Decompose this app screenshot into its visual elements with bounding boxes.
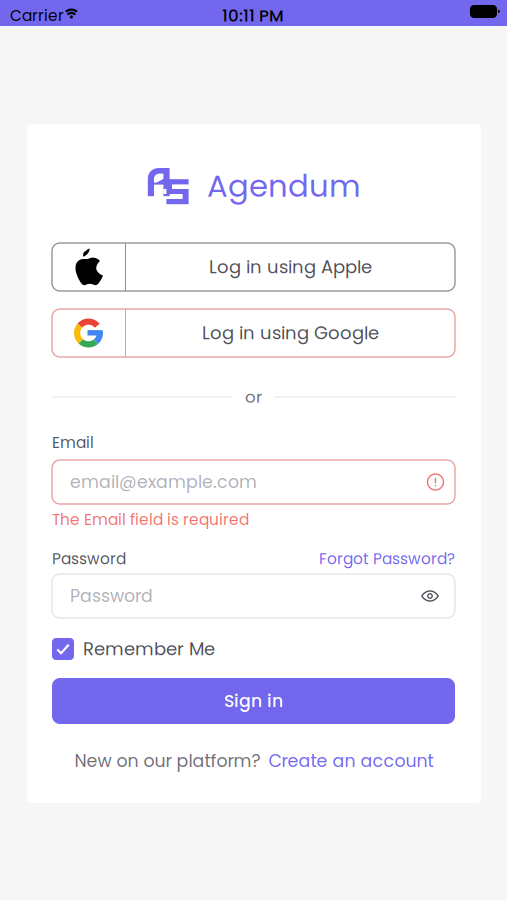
button[interactable]: Log in using Apple [52, 243, 455, 291]
staticText: Carrier [10, 5, 64, 26]
staticText: Create an account [268, 749, 433, 773]
button[interactable]: Remember Me [52, 637, 455, 661]
button[interactable]: Create an account [268, 749, 433, 773]
button[interactable]: Sign in [52, 678, 455, 724]
staticText: Sign in [224, 689, 283, 713]
staticText: Agendum [207, 164, 361, 207]
staticText: Password [70, 584, 153, 608]
staticText: Log in using Apple [209, 254, 372, 280]
staticText: or [245, 385, 262, 409]
staticText: Forgot Password? [319, 548, 455, 570]
staticText: email@example.com [70, 470, 257, 494]
staticText: The Email field is required [52, 509, 249, 530]
button[interactable]: Log in using Google [52, 309, 455, 357]
staticText: Email [52, 432, 94, 453]
staticText: 10:11 PM [222, 4, 284, 27]
staticText: Remember Me [83, 636, 215, 662]
button[interactable]: Forgot Password? [319, 548, 455, 570]
staticText: Log in using Google [202, 320, 379, 346]
staticText: New on our platform? [74, 749, 260, 773]
staticText: Password [52, 548, 126, 570]
button[interactable]: Show password [421, 588, 439, 603]
